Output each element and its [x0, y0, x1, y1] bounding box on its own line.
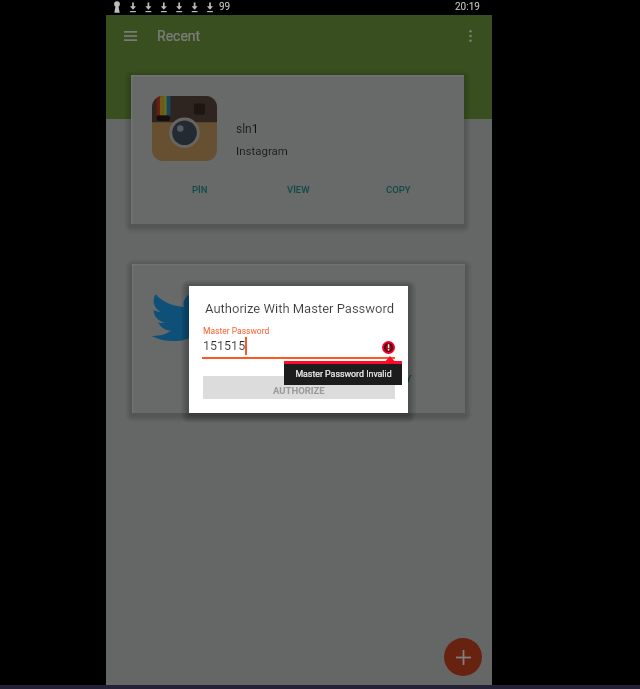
- button[interactable]: twtr: [132, 264, 465, 413]
- staticText: PİN: [192, 184, 208, 195]
- staticText: COPY: [387, 373, 412, 384]
- button[interactable]: PİN: [171, 364, 231, 392]
- staticText: Master Password Invalid: [295, 369, 392, 379]
- button[interactable]: Menu: [117, 23, 143, 49]
- staticText: 151515: [203, 338, 246, 353]
- staticText: Instagram: [236, 144, 288, 157]
- staticText: AUTHORIZE: [273, 385, 325, 396]
- staticText: 20:19: [455, 1, 480, 13]
- button[interactable]: COPY: [368, 175, 428, 203]
- staticText: PİN: [193, 373, 209, 384]
- staticText: Recent: [157, 28, 201, 44]
- button[interactable]: VİEW: [269, 364, 329, 392]
- staticText: 99: [219, 1, 231, 13]
- staticText: COPY: [386, 184, 411, 195]
- staticText: VİEW: [287, 184, 310, 195]
- button[interactable]: More options: [457, 23, 483, 49]
- staticText: twtr: [237, 311, 258, 325]
- button[interactable]: sln1: [131, 75, 464, 224]
- staticText: Authorize With Master Password: [205, 301, 395, 316]
- button[interactable]: COPY: [369, 364, 429, 392]
- staticText: Twitter: [237, 333, 273, 346]
- staticText: Master Password: [203, 326, 270, 336]
- button[interactable]: VİEW: [268, 175, 328, 203]
- staticText: VİEW: [288, 373, 311, 384]
- button[interactable]: PİN: [170, 175, 230, 203]
- button[interactable]: AUTHORIZE: [203, 376, 395, 399]
- button[interactable]: Add: [444, 638, 482, 676]
- staticText: sln1: [236, 122, 259, 136]
